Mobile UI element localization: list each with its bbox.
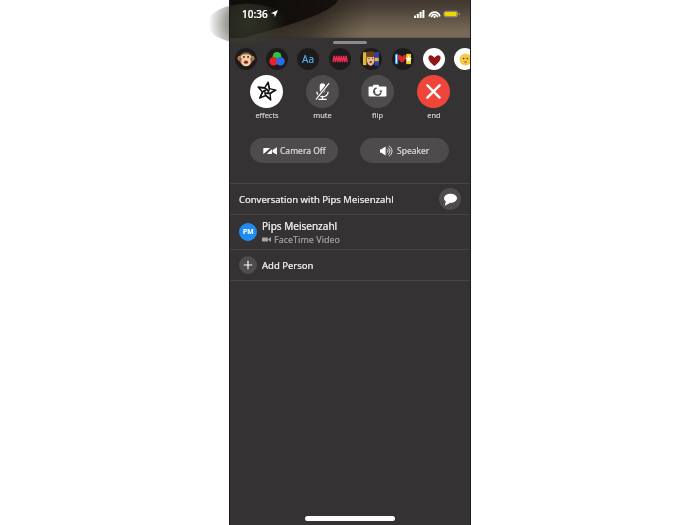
staticText: Pips Meisenzahl — [262, 219, 338, 233]
staticText: mute — [313, 110, 332, 120]
button[interactable]: filters — [266, 48, 288, 70]
staticText: Aa — [302, 52, 314, 66]
button[interactable]: stickers — [392, 48, 414, 70]
button[interactable]: emoji — [454, 48, 471, 70]
staticText: PM — [243, 227, 254, 237]
staticText: Conversation with Pips Meisenzahl — [239, 193, 394, 206]
button[interactable]: mute — [306, 75, 339, 120]
staticText: Add Person — [262, 259, 314, 272]
staticText: end — [427, 110, 441, 120]
staticText: Speaker — [397, 145, 430, 157]
button[interactable]: Messages — [439, 188, 461, 210]
staticText: effects — [255, 110, 279, 120]
button[interactable]: Camera Off — [250, 138, 338, 163]
button[interactable]: flip — [361, 75, 394, 120]
button[interactable]: Add Person — [239, 250, 461, 280]
button[interactable]: Conversation with Pips Meisenzahl — [239, 184, 461, 214]
button[interactable]: text — [297, 48, 319, 70]
button[interactable]: Speaker — [360, 138, 449, 163]
button[interactable]: end — [417, 75, 450, 120]
staticText: 10:36 — [242, 7, 268, 21]
button[interactable]: effects — [250, 75, 283, 120]
staticText: FaceTime Video — [274, 233, 341, 245]
button[interactable]: monkey — [235, 48, 257, 70]
button[interactable]: scribble — [329, 48, 351, 70]
button[interactable]: PM — [239, 215, 461, 249]
button[interactable]: memoji — [360, 48, 382, 70]
button[interactable]: heart — [423, 48, 445, 70]
staticText: flip — [372, 110, 383, 120]
staticText: Camera Off — [280, 145, 326, 157]
